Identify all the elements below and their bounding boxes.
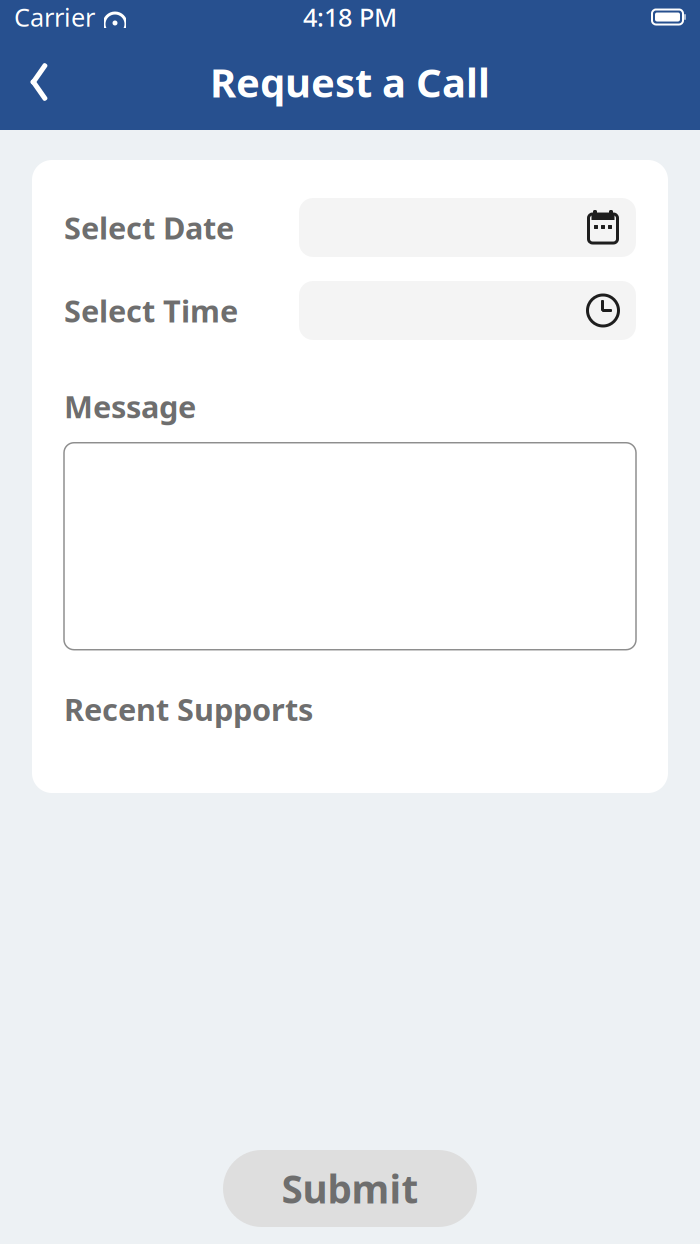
staticText: Select Time <box>64 290 238 331</box>
staticText: Select Date <box>64 207 234 248</box>
staticText: Carrier <box>14 0 95 34</box>
button[interactable]: Select Time <box>299 281 636 340</box>
staticText: Request a Call <box>210 55 490 108</box>
staticText: Message <box>64 386 196 427</box>
staticText: Recent Supports <box>64 689 313 729</box>
staticText: 4:18 PM <box>303 0 397 34</box>
button[interactable]: Submit <box>223 1150 477 1227</box>
button[interactable]: Select Date <box>299 198 636 257</box>
staticText: Submit <box>281 1163 418 1214</box>
button[interactable]: Back <box>10 50 68 114</box>
